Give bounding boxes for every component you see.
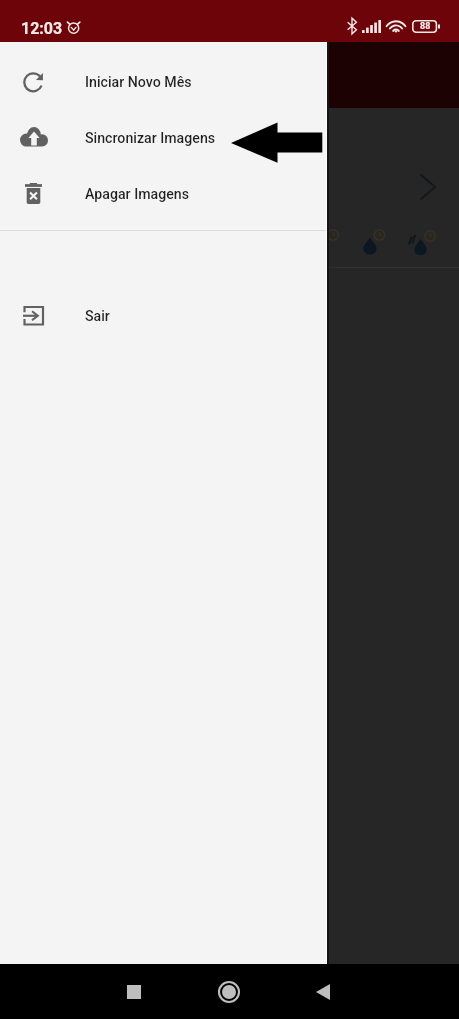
button[interactable]: Apagar Imagens xyxy=(0,166,326,222)
staticText: 12:03 xyxy=(21,19,63,38)
button[interactable]: Home xyxy=(205,968,253,1016)
button[interactable]: Recents xyxy=(110,968,158,1016)
staticText: Apagar Imagens xyxy=(85,186,190,203)
button[interactable]: Sincronizar Imagens xyxy=(0,110,326,166)
staticText: Sincronizar Imagens xyxy=(85,130,216,147)
button[interactable]: Back xyxy=(299,968,347,1016)
staticText: Sair xyxy=(85,308,110,325)
staticText: Iniciar Novo Mês xyxy=(85,74,192,91)
button[interactable]: Sair xyxy=(0,288,326,344)
button[interactable]: Iniciar Novo Mês xyxy=(0,54,326,110)
staticText: 88 xyxy=(420,21,431,32)
